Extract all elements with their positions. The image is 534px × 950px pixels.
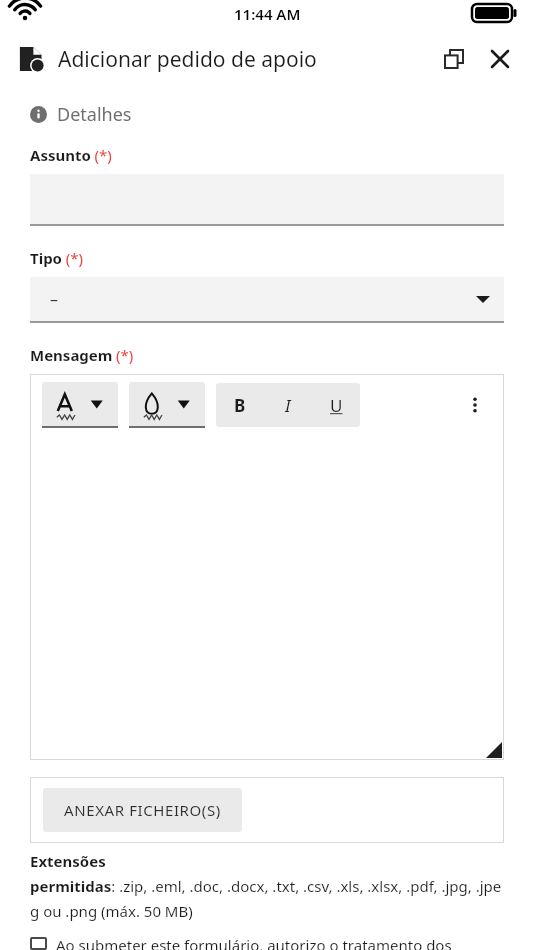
staticText: Assunto (*) xyxy=(30,145,112,165)
button[interactable]: Cor de fundo xyxy=(129,382,205,428)
staticText: Detalhes xyxy=(57,102,132,127)
staticText: 11:44 AM xyxy=(234,4,301,24)
button[interactable]: – xyxy=(30,277,504,321)
button[interactable]: Ao submeter este formulário, autorizo o … xyxy=(30,935,452,950)
staticText: Tipo (*) xyxy=(30,248,83,268)
staticText: Extensões permitidas: .zip, .eml, .doc, … xyxy=(30,851,504,921)
staticText: Mensagem (*) xyxy=(30,345,134,365)
button[interactable]: I xyxy=(264,383,312,427)
staticText: ANEXAR FICHEIRO(S) xyxy=(64,800,221,820)
staticText: – xyxy=(50,288,59,310)
button[interactable]: Fechar xyxy=(482,41,518,77)
button[interactable]: Cor do texto xyxy=(42,382,118,428)
button[interactable]: Restaurar janela xyxy=(436,41,472,77)
staticText: Ao submeter este formulário, autorizo o … xyxy=(56,935,452,950)
button[interactable]: ANEXAR FICHEIRO(S) xyxy=(43,788,242,832)
button[interactable]: B xyxy=(216,383,264,427)
staticText: B xyxy=(234,394,246,417)
button[interactable]: U xyxy=(312,383,360,427)
button[interactable]: Mais opções xyxy=(458,388,492,422)
staticText: Adicionar pedido de apoio xyxy=(58,45,317,74)
staticText: U xyxy=(330,394,343,417)
staticText: I xyxy=(285,394,291,417)
